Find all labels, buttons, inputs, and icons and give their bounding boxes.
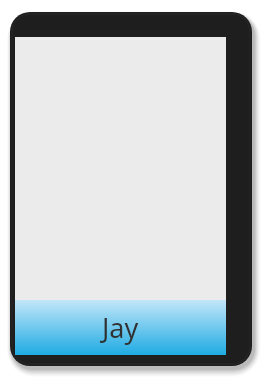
button[interactable]: Jay device preview [0, 0, 274, 384]
